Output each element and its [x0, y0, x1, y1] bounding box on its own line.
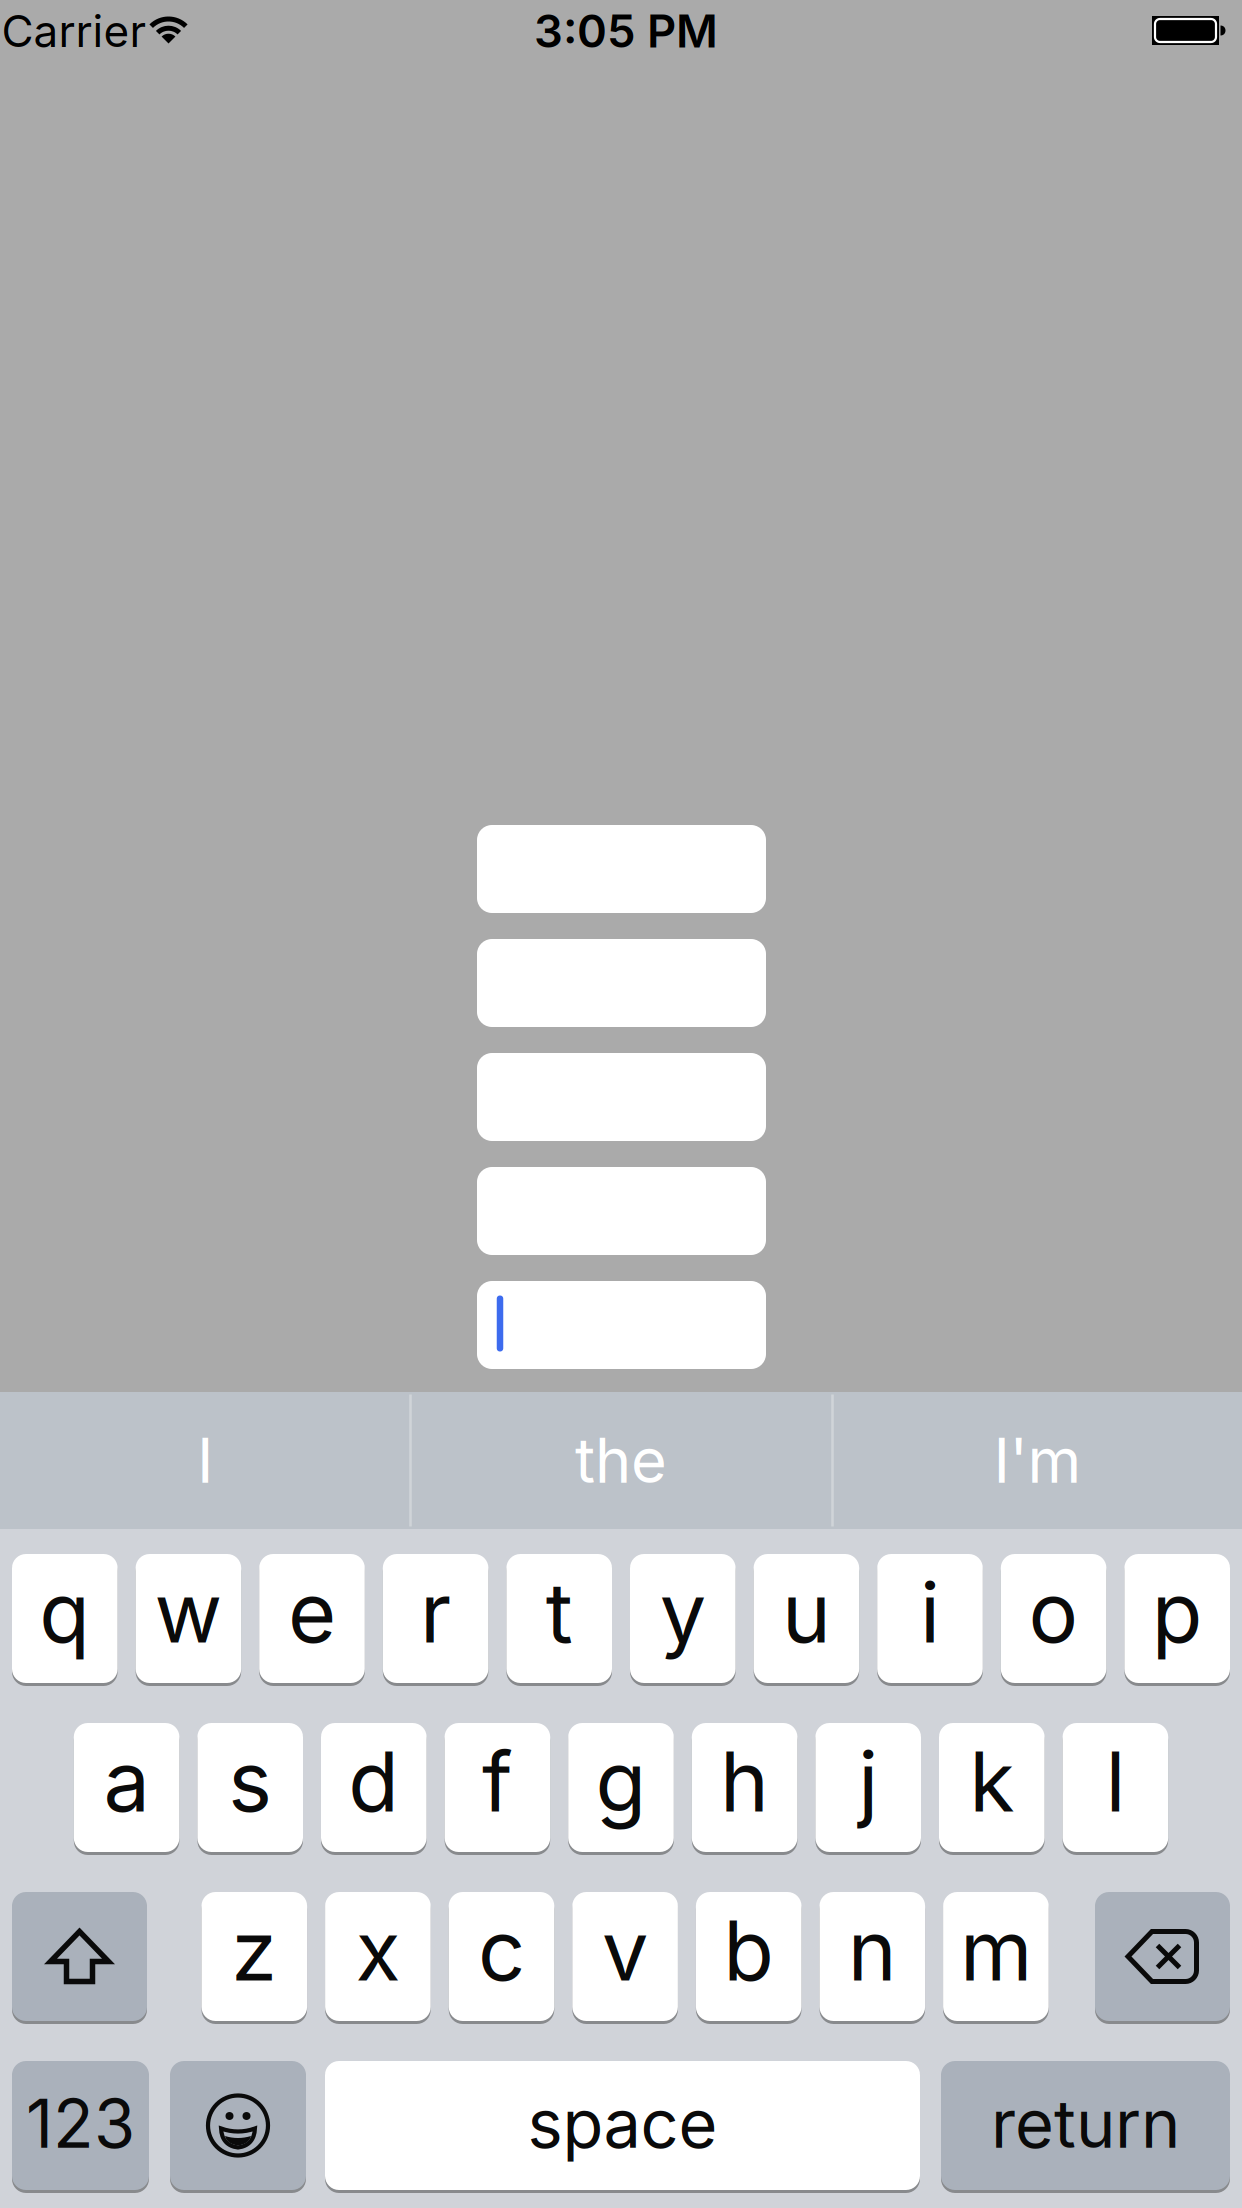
button[interactable]: return — [941, 2061, 1230, 2190]
button[interactable]: y — [630, 1554, 736, 1683]
staticText: p — [1152, 1564, 1203, 1661]
staticText: k — [969, 1733, 1014, 1830]
button[interactable]: b — [696, 1892, 801, 2021]
staticText: g — [595, 1733, 646, 1830]
button[interactable]: v — [572, 1892, 678, 2021]
staticText: r — [420, 1564, 451, 1661]
button[interactable]: the — [411, 1392, 830, 1529]
button[interactable]: Emoji — [170, 2061, 306, 2190]
button[interactable]: g — [568, 1723, 674, 1852]
button[interactable]: Shift — [12, 1892, 147, 2021]
button[interactable]: r — [383, 1554, 488, 1683]
staticText: t — [546, 1564, 573, 1661]
button[interactable]: z — [201, 1892, 307, 2021]
button[interactable]: Text field — [477, 825, 766, 913]
button[interactable]: c — [449, 1892, 554, 2021]
staticText: y — [660, 1564, 706, 1661]
button[interactable]: p — [1124, 1554, 1230, 1683]
staticText: I — [197, 1424, 213, 1497]
button[interactable]: m — [943, 1892, 1049, 2021]
staticText: h — [720, 1733, 769, 1830]
button[interactable]: w — [136, 1554, 241, 1683]
button[interactable]: t — [506, 1554, 612, 1683]
staticText: return — [991, 2084, 1180, 2163]
button[interactable]: j — [815, 1723, 921, 1852]
staticText: j — [858, 1733, 878, 1830]
button[interactable]: Text field — [477, 1281, 766, 1369]
button[interactable]: x — [325, 1892, 431, 2021]
staticText: a — [104, 1733, 150, 1830]
staticText: u — [782, 1564, 831, 1661]
staticText: 123 — [26, 2084, 135, 2163]
button[interactable]: q — [12, 1554, 118, 1683]
button[interactable]: Delete — [1095, 1892, 1230, 2021]
staticText: l — [1105, 1733, 1125, 1830]
button[interactable]: d — [321, 1723, 427, 1852]
staticText: i — [920, 1564, 940, 1661]
button[interactable]: Text field — [477, 1167, 766, 1255]
button[interactable]: a — [74, 1723, 179, 1852]
staticText: e — [288, 1564, 336, 1661]
staticText: n — [848, 1902, 897, 1999]
staticText: c — [478, 1902, 525, 1999]
staticText: f — [482, 1733, 513, 1830]
staticText: x — [355, 1902, 400, 1999]
staticText: space — [527, 2084, 717, 2163]
button[interactable]: Numbers — [12, 2061, 149, 2190]
button[interactable]: l — [1063, 1723, 1168, 1852]
staticText: the — [575, 1424, 667, 1497]
button[interactable]: k — [939, 1723, 1045, 1852]
staticText: s — [228, 1733, 272, 1830]
button[interactable]: Text field — [477, 939, 766, 1027]
button[interactable]: h — [692, 1723, 797, 1852]
button[interactable]: Text field — [477, 1053, 766, 1141]
button[interactable]: u — [754, 1554, 859, 1683]
staticText: m — [960, 1902, 1032, 1999]
staticText: o — [1029, 1564, 1079, 1661]
button[interactable]: s — [197, 1723, 303, 1852]
button[interactable]: I'm — [834, 1392, 1241, 1529]
staticText: q — [39, 1564, 90, 1661]
staticText: Carrier — [1, 5, 146, 57]
button[interactable]: I — [0, 1392, 409, 1529]
staticText: z — [231, 1902, 277, 1999]
staticText: v — [602, 1902, 648, 1999]
button[interactable]: n — [819, 1892, 925, 2021]
button[interactable]: o — [1001, 1554, 1106, 1683]
staticText: I'm — [993, 1424, 1081, 1497]
staticText: b — [723, 1902, 774, 1999]
staticText: d — [348, 1733, 399, 1830]
button[interactable]: f — [445, 1723, 550, 1852]
button[interactable]: e — [259, 1554, 365, 1683]
staticText: w — [154, 1564, 222, 1661]
staticText: 3:05 PM — [534, 4, 718, 58]
button[interactable]: i — [877, 1554, 983, 1683]
button[interactable]: space — [325, 2061, 920, 2190]
